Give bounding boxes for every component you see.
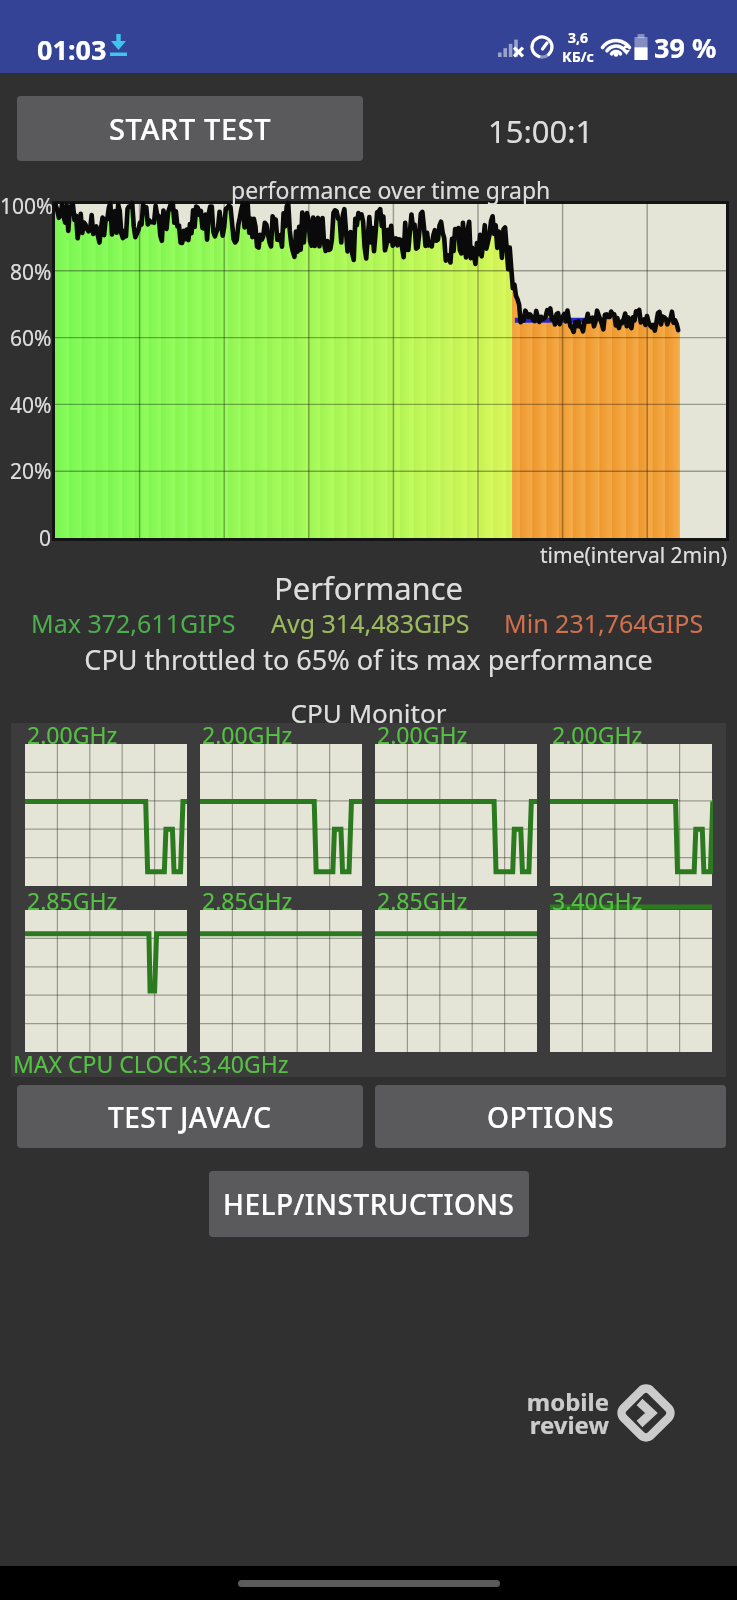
button[interactable]: HELP/INSTRUCTIONS — [209, 1171, 529, 1237]
staticText: 0 — [39, 524, 52, 553]
staticText: 80% — [10, 258, 52, 287]
staticText: 2.00GHz — [377, 719, 468, 750]
staticText: 40% — [10, 391, 52, 420]
staticText: Min 231,764GIPS — [504, 606, 704, 640]
staticText: 60% — [10, 324, 52, 353]
staticText: Avg 314,483GIPS — [271, 606, 470, 640]
staticText: START TEST — [109, 109, 272, 148]
staticText: mobile review — [526, 1385, 609, 1441]
staticText: MAX CPU CLOCK:3.40GHz — [13, 1048, 289, 1079]
button[interactable]: TEST JAVA/C — [17, 1085, 363, 1148]
staticText: time(interval 2min) — [540, 541, 727, 570]
staticText: 2.85GHz — [27, 885, 118, 916]
staticText: 3,6 — [568, 28, 589, 47]
staticText: TEST JAVA/C — [108, 1098, 272, 1136]
staticText: CPU Monitor — [0, 695, 737, 730]
staticText: 2.00GHz — [27, 719, 118, 750]
staticText: 01:03 — [37, 31, 107, 68]
button[interactable]: OPTIONS — [375, 1085, 726, 1148]
staticText: 100% — [0, 192, 52, 221]
staticText: 15:00:1 — [488, 110, 594, 152]
other: Downloading — [110, 34, 127, 56]
staticText: OPTIONS — [487, 1098, 615, 1136]
staticText: 2.85GHz — [202, 885, 293, 916]
staticText: КБ/с — [562, 47, 594, 66]
staticText: 2.00GHz — [202, 719, 293, 750]
button[interactable]: START TEST — [17, 96, 363, 161]
staticText: 39 % — [654, 29, 717, 66]
staticText: Performance — [0, 567, 737, 609]
staticText: performance over time graph — [231, 174, 551, 205]
staticText: 2.00GHz — [552, 719, 643, 750]
staticText: HELP/INSTRUCTIONS — [223, 1185, 515, 1223]
staticText: Max 372,611GIPS — [31, 606, 236, 640]
staticText: 2.85GHz — [377, 885, 468, 916]
staticText: 3.40GHz — [552, 885, 643, 916]
staticText: 20% — [10, 457, 52, 486]
staticText: CPU throttled to 65% of its max performa… — [0, 641, 737, 678]
